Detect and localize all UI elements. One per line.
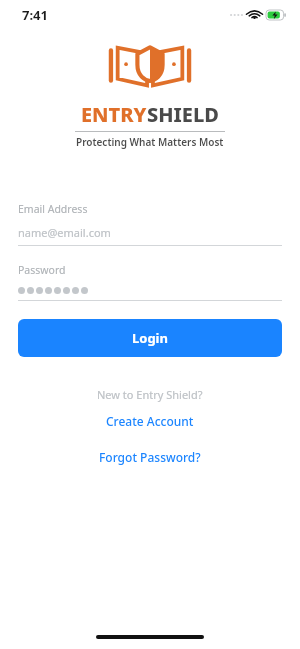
staticText: Password <box>18 263 66 277</box>
button[interactable]: Login <box>18 319 282 357</box>
staticText: name@email.com <box>18 225 111 240</box>
staticText: Protecting What Matters Most <box>76 135 224 149</box>
staticText: Email Address <box>18 202 88 216</box>
other: Entry Shield logo <box>108 43 192 90</box>
staticText: Login <box>132 329 168 347</box>
staticText: Create Account <box>106 413 194 429</box>
staticText: 7:41 <box>22 6 48 24</box>
button[interactable]: name@email.com <box>18 225 282 240</box>
button[interactable] <box>18 285 282 296</box>
button[interactable]: Create Account <box>98 411 202 431</box>
staticText: Forgot Password? <box>99 449 201 465</box>
staticText: New to Entry Shield? <box>97 387 203 402</box>
button[interactable]: Forgot Password? <box>91 447 209 467</box>
staticText: SHIELD <box>147 101 219 128</box>
staticText: ENTRY <box>81 101 147 128</box>
